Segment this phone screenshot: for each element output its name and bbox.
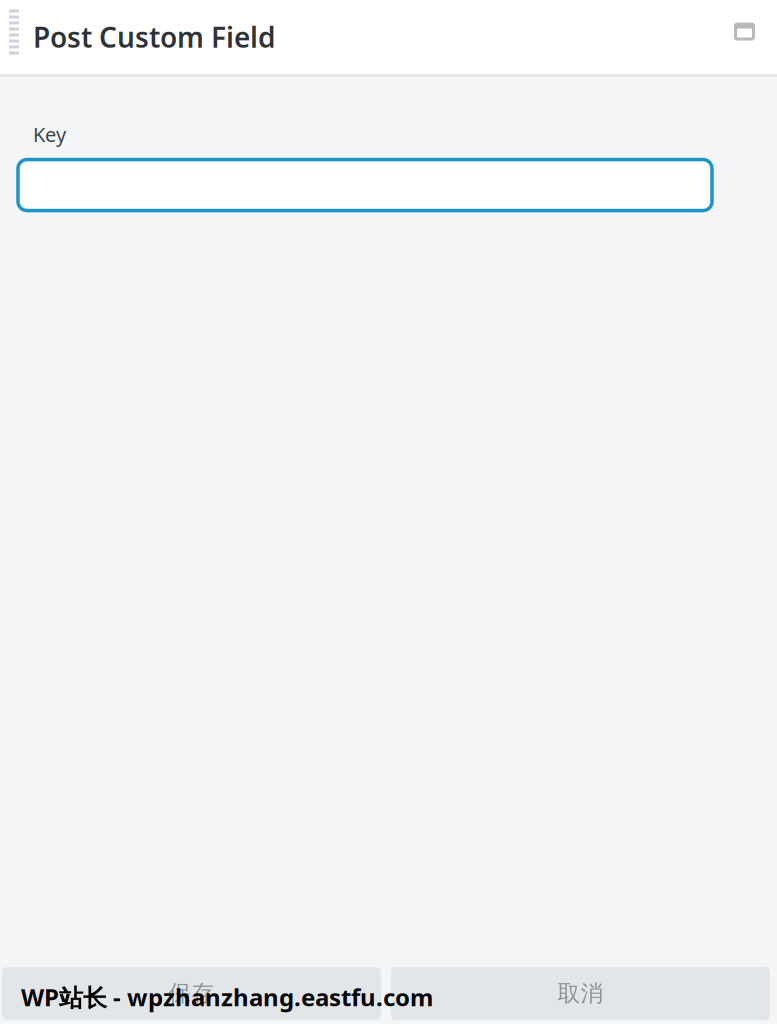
button[interactable]: 取消 xyxy=(391,967,770,1020)
staticText: 取消 xyxy=(557,980,603,1007)
button[interactable]: 保存 xyxy=(2,967,381,1020)
button[interactable]: Display options xyxy=(734,22,777,51)
staticText: WP站长 - wpzhanzhang.eastfu.com xyxy=(21,981,433,1013)
staticText: Post Custom Field xyxy=(33,18,276,56)
staticText: 保存 xyxy=(168,980,214,1007)
staticText: Key xyxy=(33,121,66,148)
